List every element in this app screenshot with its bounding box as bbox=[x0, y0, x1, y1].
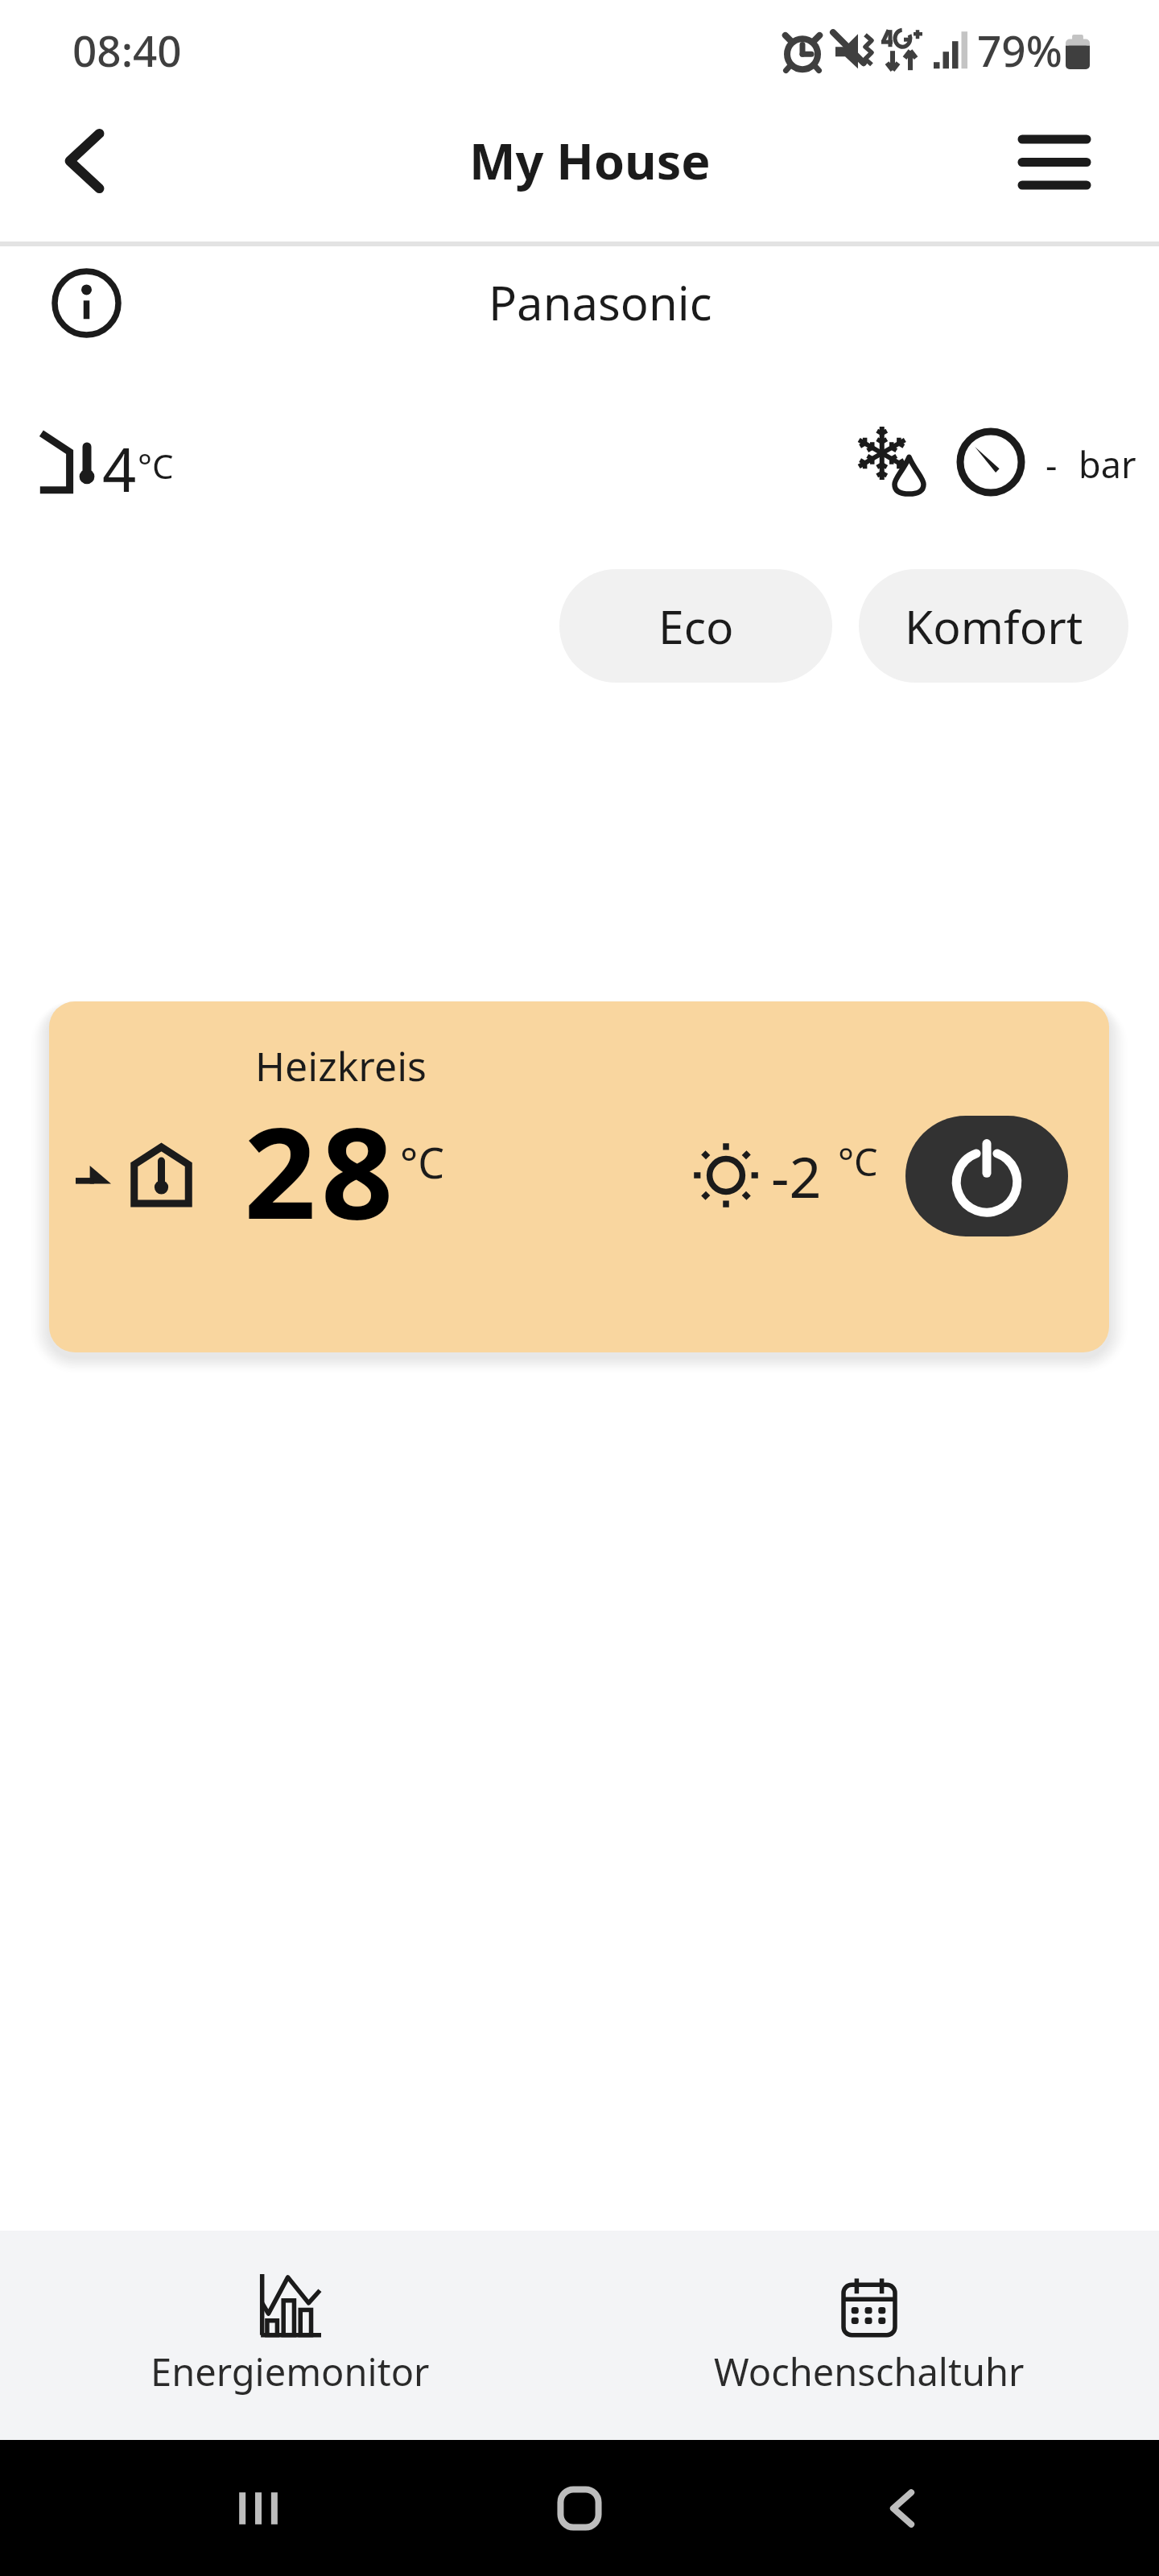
staticText: Komfort bbox=[905, 595, 1083, 658]
staticText: °C bbox=[138, 443, 174, 489]
button[interactable]: Back bbox=[845, 2451, 959, 2566]
button[interactable]: Eco bbox=[559, 569, 832, 683]
button[interactable]: Energiemonitor bbox=[0, 2231, 579, 2440]
staticText: - bbox=[1046, 440, 1058, 489]
button[interactable]: Home bbox=[522, 2451, 637, 2566]
button[interactable]: Power bbox=[905, 1116, 1068, 1236]
button[interactable]: Recent apps bbox=[201, 2451, 316, 2566]
button[interactable]: Back bbox=[38, 117, 126, 205]
staticText: bar bbox=[1079, 440, 1136, 489]
staticText: Wochenschaltuhr bbox=[714, 2346, 1025, 2397]
staticText: Eco bbox=[658, 595, 734, 658]
staticText: Heizkreis bbox=[255, 1038, 427, 1093]
staticText: 08:40 bbox=[72, 21, 182, 79]
staticText: Panasonic bbox=[489, 270, 712, 334]
staticText: -2 bbox=[771, 1137, 822, 1214]
button[interactable]: Heizkreis bbox=[49, 1001, 1109, 1352]
staticText: My House bbox=[469, 127, 711, 194]
staticText: °C bbox=[838, 1136, 878, 1187]
staticText: Energiemonitor bbox=[151, 2346, 430, 2397]
staticText: 28 bbox=[244, 1084, 398, 1256]
staticText: 4 bbox=[102, 428, 137, 510]
staticText: 79% bbox=[977, 21, 1062, 79]
staticText: °C bbox=[400, 1133, 445, 1191]
button[interactable]: Information bbox=[52, 268, 122, 338]
button[interactable]: Wochenschaltuhr bbox=[579, 2231, 1159, 2440]
button[interactable]: Komfort bbox=[859, 569, 1128, 683]
button[interactable]: Menu bbox=[1014, 121, 1095, 201]
